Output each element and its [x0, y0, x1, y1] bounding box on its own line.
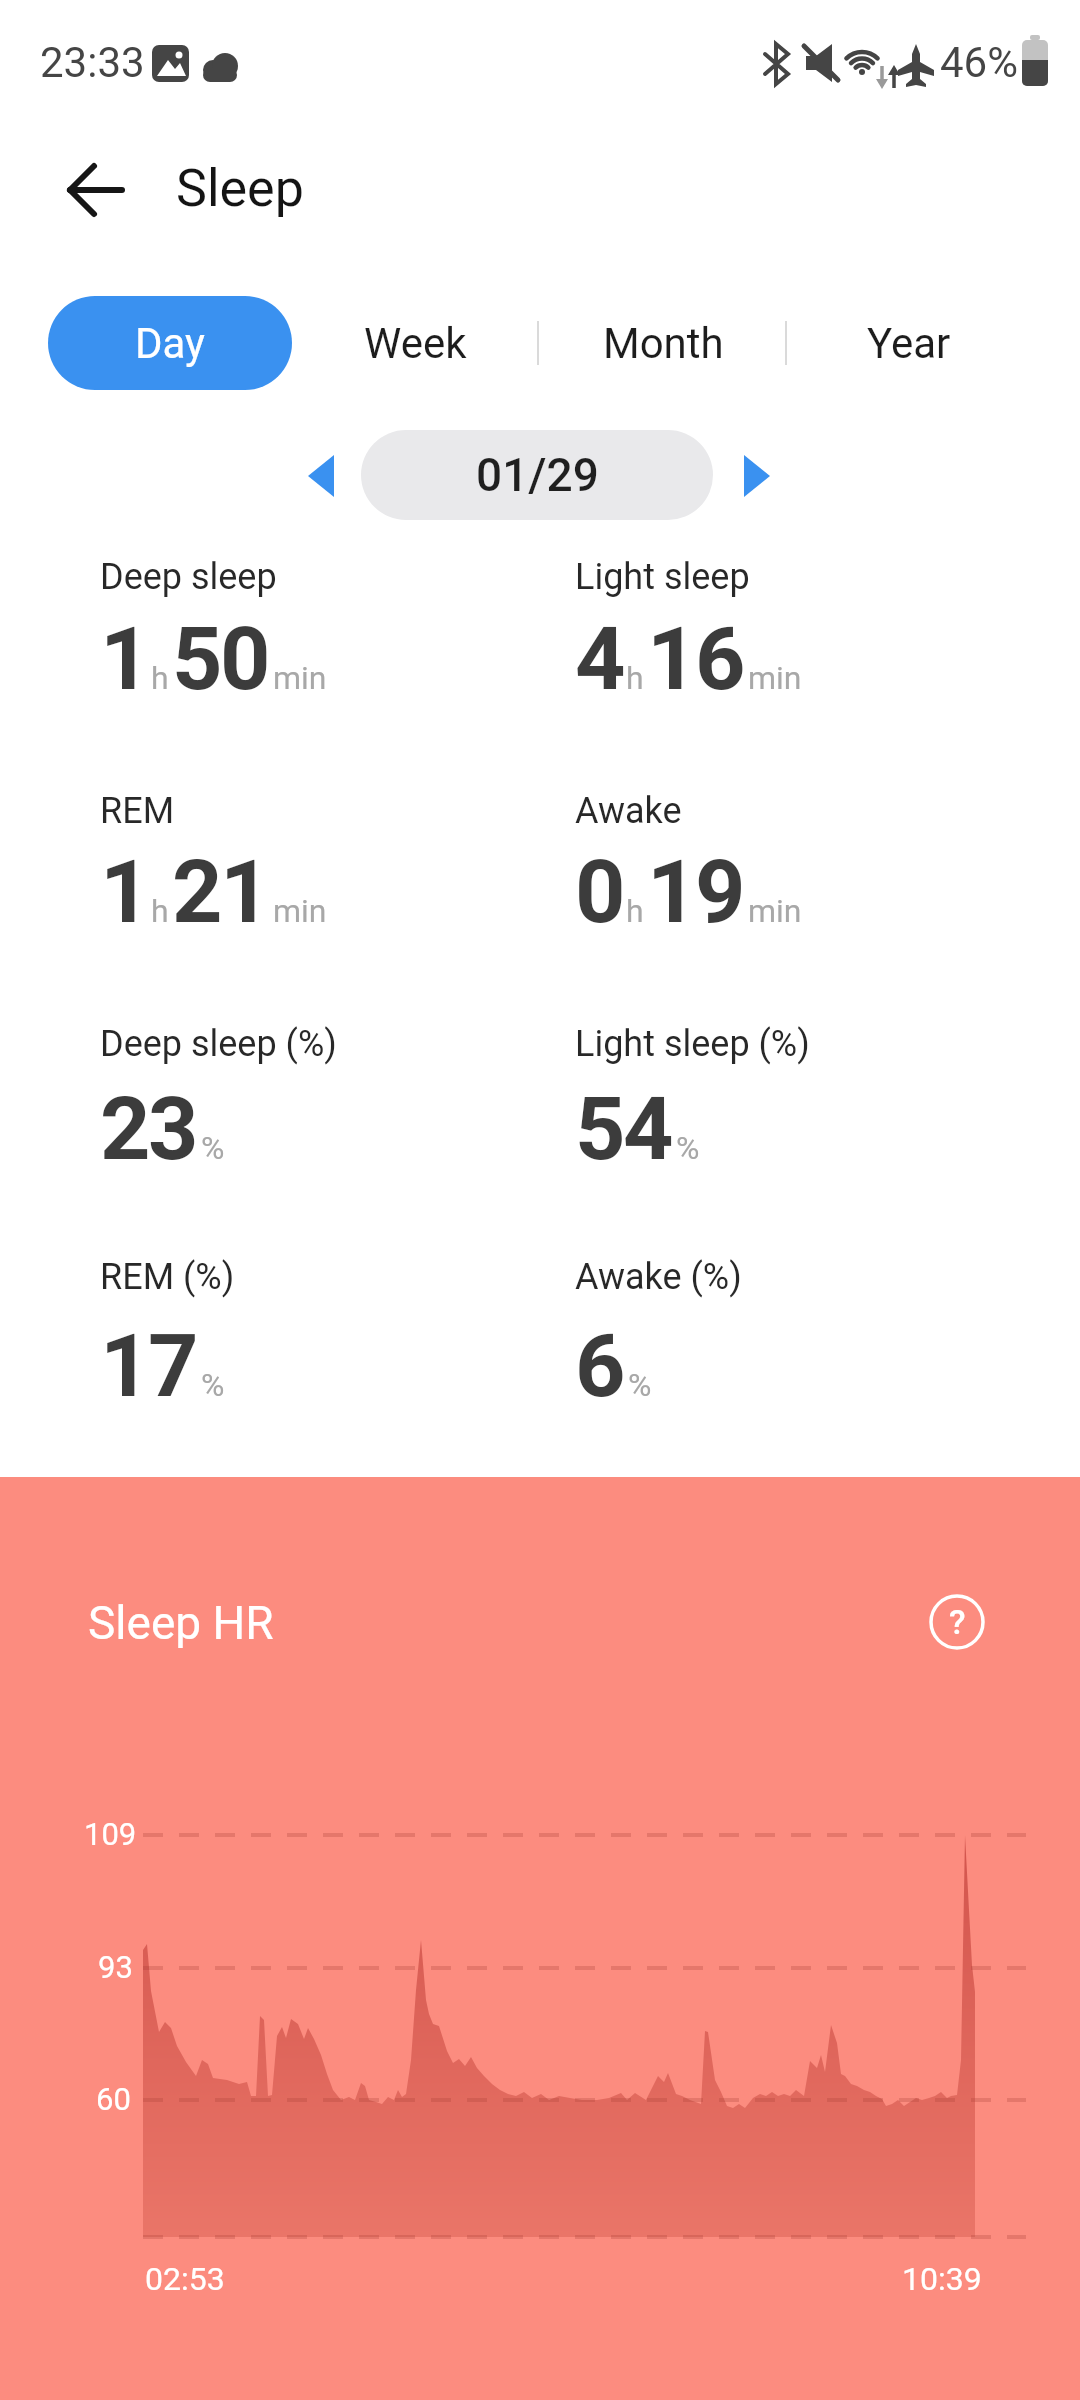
staticText: 1 [100, 840, 148, 943]
staticText: 60 [96, 2081, 131, 2117]
button[interactable] [734, 444, 784, 508]
staticText: Light sleep (%) [575, 1023, 810, 1065]
staticText: min [273, 892, 327, 930]
staticText: min [748, 659, 802, 697]
button[interactable] [56, 156, 132, 224]
staticText: 23:33 [40, 38, 145, 87]
staticText: Deep sleep (%) [100, 1023, 337, 1065]
staticText: 109 [84, 1816, 137, 1852]
staticText: 21 [172, 840, 268, 943]
staticText: h [151, 659, 169, 697]
staticText: REM (%) [100, 1256, 235, 1298]
button[interactable]: Day [48, 296, 292, 390]
staticText: Day [135, 319, 205, 368]
staticText: % [676, 1129, 700, 1167]
staticText: Sleep [176, 158, 304, 219]
staticText: ? [949, 1602, 966, 1642]
staticText: % [201, 1366, 225, 1404]
staticText: min [273, 659, 327, 697]
staticText: Sleep HR [88, 1596, 274, 1650]
staticText: h [626, 659, 644, 697]
staticText: 19 [647, 840, 743, 943]
staticText: Deep sleep [100, 556, 277, 598]
staticText: % [628, 1366, 652, 1404]
staticText: 1 [100, 607, 148, 710]
staticText: Awake (%) [575, 1256, 742, 1298]
staticText: 0 [575, 840, 623, 943]
staticText: 93 [98, 1949, 133, 1985]
button[interactable]: Month [540, 296, 786, 390]
staticText: 46% [940, 38, 1018, 87]
staticText: REM [100, 790, 175, 832]
staticText: 01/29 [476, 448, 599, 502]
staticText: % [201, 1129, 225, 1167]
button[interactable]: ? [928, 1593, 986, 1651]
staticText: 10:39 [902, 2260, 982, 2298]
staticText: h [626, 892, 644, 930]
staticText: Week [364, 319, 467, 368]
staticText: Year [867, 319, 951, 368]
button[interactable]: Week [292, 296, 538, 390]
button[interactable] [296, 444, 346, 508]
staticText: Month [603, 319, 724, 368]
staticText: Light sleep [575, 556, 750, 598]
button[interactable]: Year [786, 296, 1032, 390]
staticText: 02:53 [145, 2260, 225, 2298]
staticText: 6 [575, 1314, 623, 1417]
staticText: 50 [172, 607, 268, 710]
staticText: h [151, 892, 169, 930]
button[interactable]: 01/29 [361, 430, 713, 520]
staticText: 23 [100, 1077, 196, 1180]
staticText: 4 [575, 607, 623, 710]
staticText: 17 [100, 1314, 196, 1417]
staticText: 54 [575, 1077, 671, 1180]
staticText: min [748, 892, 802, 930]
staticText: Awake [575, 790, 682, 832]
staticText: 16 [647, 607, 743, 710]
